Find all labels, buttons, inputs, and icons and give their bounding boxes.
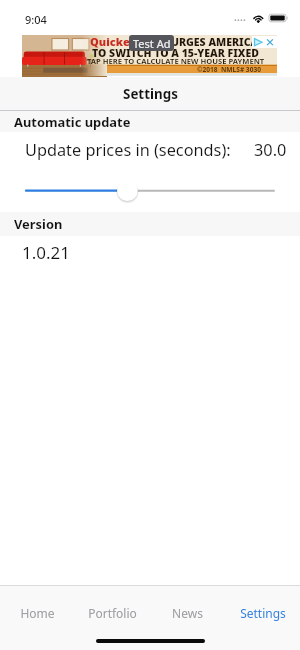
staticText: News (172, 605, 203, 621)
staticText: URGES AMERICA (171, 35, 259, 49)
staticText: Portfolio (88, 605, 137, 621)
staticText: Quicken Loans (90, 34, 174, 49)
button[interactable]: Settings (225, 603, 300, 623)
button[interactable]: Home (0, 603, 75, 623)
staticText: TO SWITCH TO A 15-YEAR FIXED (92, 46, 259, 60)
button[interactable]: News (150, 603, 225, 623)
staticText: TAP HERE TO CALCULATE NEW HOUSE PAYMENT (87, 56, 265, 66)
staticText: 9:04 (25, 12, 47, 27)
staticText: Test Ad (133, 36, 171, 51)
button[interactable]: Portfolio (75, 603, 150, 623)
staticText: ©2018 NMLS# 3030 (197, 65, 261, 74)
staticText: Automatic update (14, 113, 131, 131)
staticText: Settings (240, 605, 286, 621)
staticText: Settings (123, 85, 178, 103)
staticText: Version (14, 215, 63, 233)
staticText: Update prices in (seconds): (25, 139, 231, 161)
button[interactable]: Update interval slider (14, 176, 286, 206)
staticText: 1.0.21 (22, 241, 71, 264)
button[interactable]: Advertisement (22, 35, 277, 76)
staticText: 30.0 (254, 139, 287, 161)
staticText: Home (20, 605, 55, 621)
